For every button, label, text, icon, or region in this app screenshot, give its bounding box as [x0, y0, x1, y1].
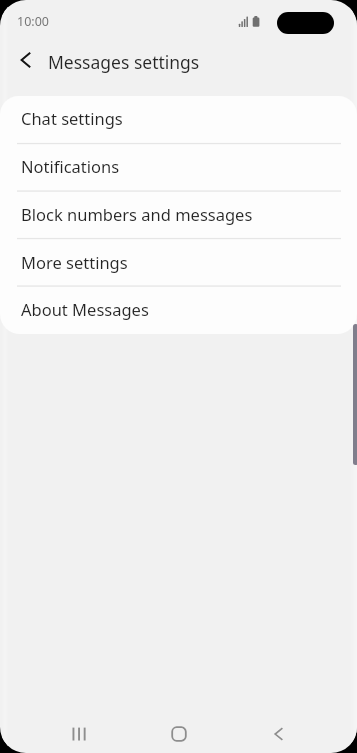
other: Mobile signal	[238, 16, 249, 28]
button[interactable]: Notifications	[0, 144, 357, 192]
staticText: More settings	[21, 251, 128, 273]
button[interactable]: Back	[259, 714, 299, 753]
staticText: 10:00	[17, 13, 49, 30]
button[interactable]: About Messages	[0, 288, 357, 334]
staticText: About Messages	[21, 298, 149, 320]
staticText: Notifications	[21, 155, 120, 177]
staticText: Chat settings	[21, 107, 123, 129]
staticText: Messages settings	[48, 50, 200, 74]
staticText: Block numbers and messages	[21, 203, 253, 225]
button[interactable]: Home	[159, 714, 199, 753]
button[interactable]: Navigate up	[8, 42, 44, 78]
button[interactable]: More settings	[0, 240, 357, 288]
other: Battery	[252, 15, 261, 28]
button[interactable]: Block numbers and messages	[0, 192, 357, 240]
button[interactable]: Recent apps	[59, 714, 99, 753]
button[interactable]: Chat settings	[0, 96, 357, 144]
